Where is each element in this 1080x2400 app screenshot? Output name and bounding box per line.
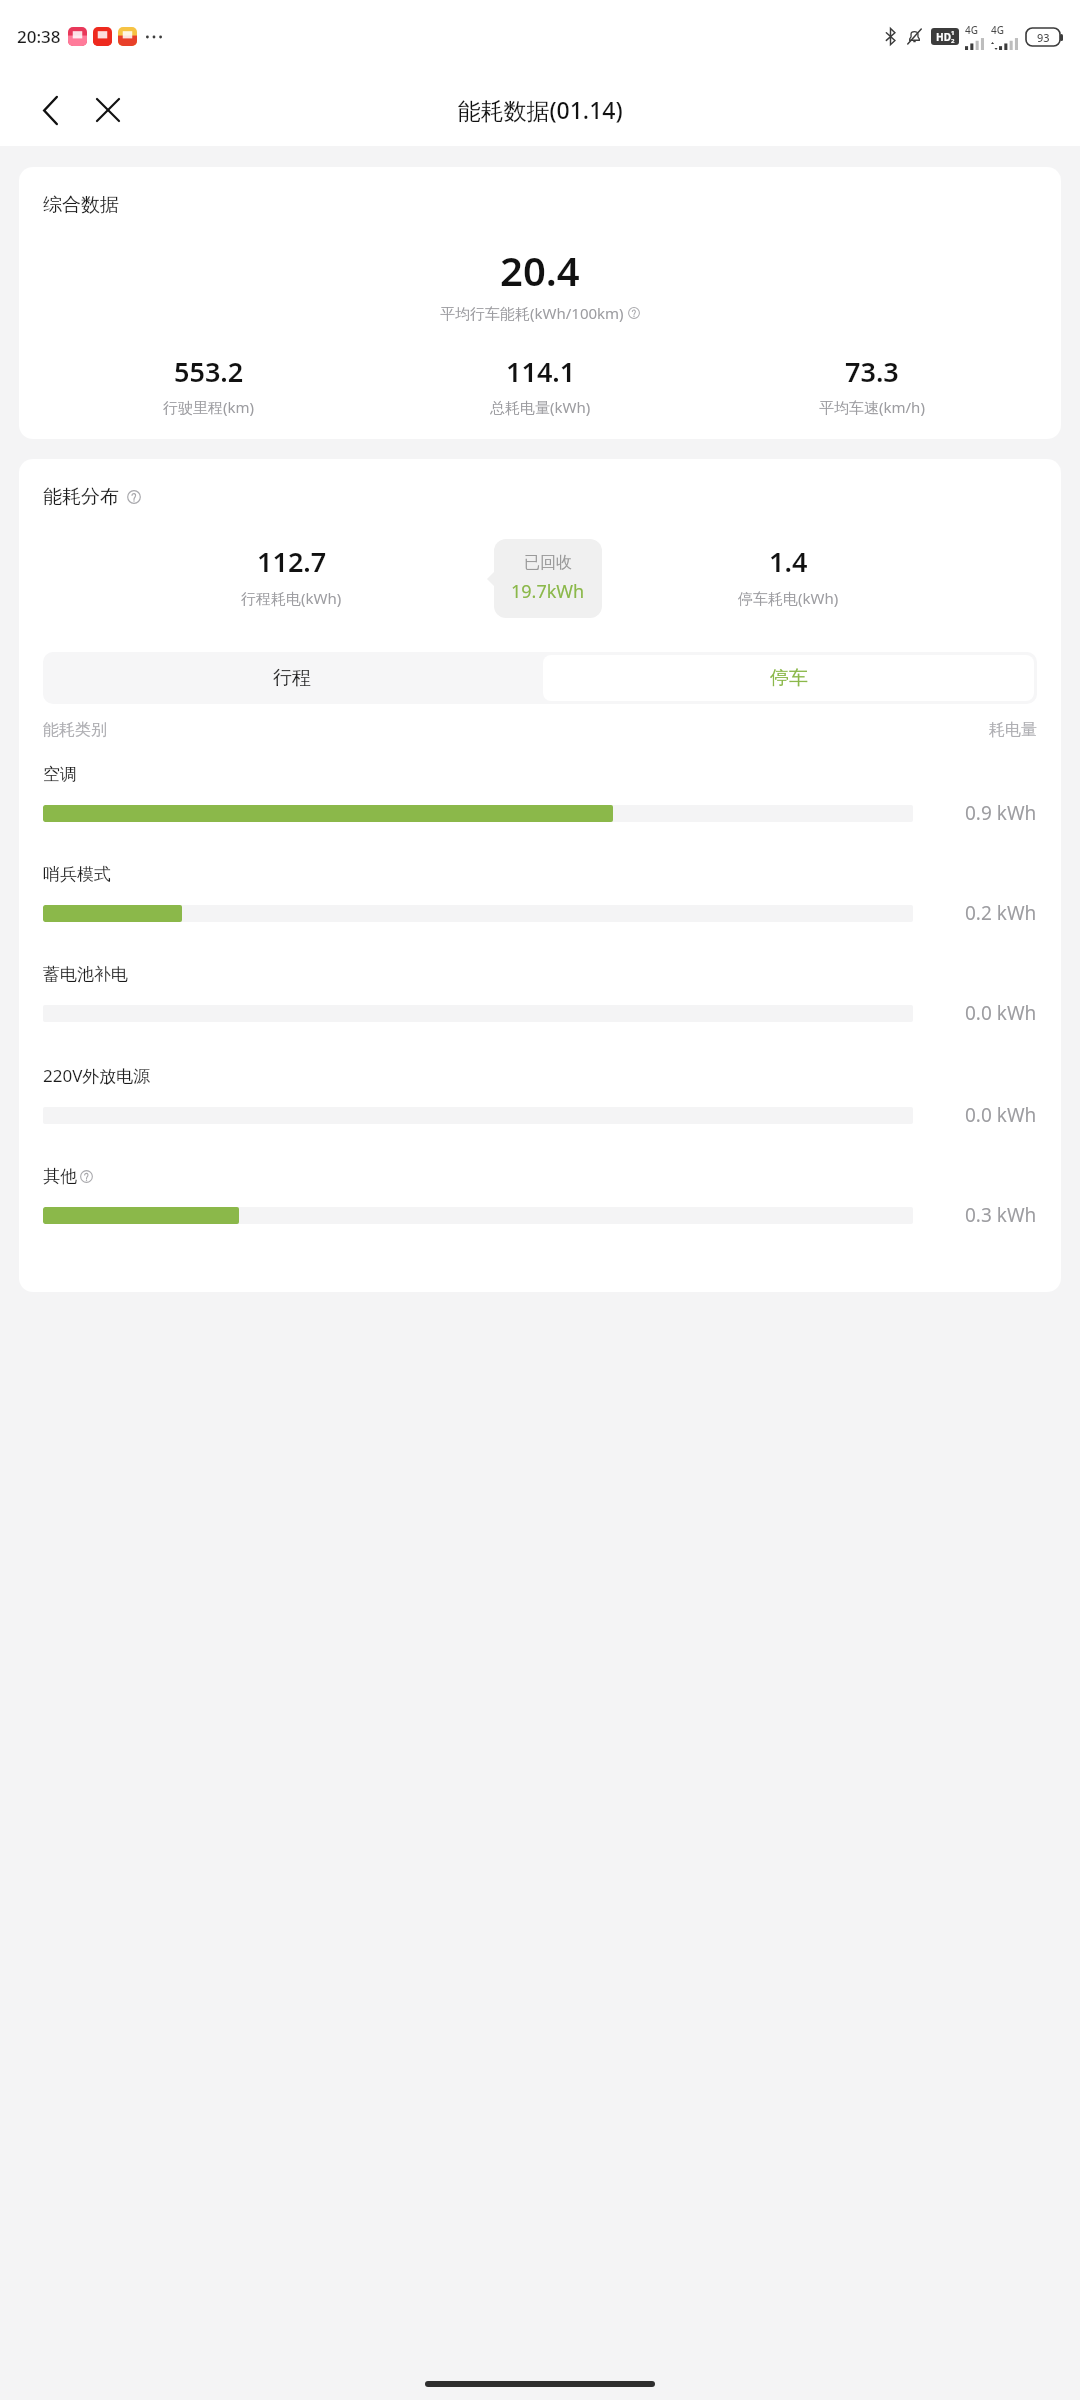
staticText: 4G bbox=[965, 23, 978, 37]
button[interactable]: 行程 bbox=[43, 652, 540, 704]
staticText: 220V外放电源 bbox=[43, 1064, 151, 1087]
staticText: 停车 bbox=[770, 666, 808, 690]
staticText: 4G bbox=[991, 23, 1004, 37]
staticText: 总耗电量(kWh) bbox=[490, 397, 591, 417]
button[interactable]: Back bbox=[24, 84, 76, 136]
staticText: 其他 bbox=[43, 1166, 77, 1187]
staticText: 空调 bbox=[43, 764, 77, 785]
staticText: 哨兵模式 bbox=[43, 864, 111, 885]
staticText: 行程 bbox=[273, 666, 311, 690]
staticText: 1 bbox=[951, 29, 955, 37]
staticText: 2 bbox=[951, 37, 955, 45]
staticText: 19.7kWh bbox=[511, 579, 585, 604]
staticText: 1.4 bbox=[769, 543, 808, 580]
staticText: 平均行车能耗(kWh/100km) bbox=[440, 303, 624, 323]
staticText: 73.3 bbox=[845, 353, 899, 390]
staticText: HD bbox=[936, 30, 951, 44]
staticText: 93 bbox=[1037, 30, 1050, 45]
staticText: 能耗数据(01.14) bbox=[457, 94, 623, 125]
staticText: 0.9 kWh bbox=[965, 800, 1037, 826]
button[interactable]: 停车 bbox=[543, 655, 1034, 701]
staticText: 553.2 bbox=[174, 353, 244, 390]
staticText: 已回收 bbox=[524, 553, 572, 573]
staticText: 114.1 bbox=[506, 353, 576, 390]
staticText: 0.3 kWh bbox=[965, 1202, 1037, 1228]
staticText: 112.7 bbox=[257, 543, 327, 580]
staticText: 行驶里程(km) bbox=[163, 397, 255, 417]
staticText: 综合数据 bbox=[43, 193, 119, 217]
staticText: 行程耗电(kWh) bbox=[241, 588, 342, 608]
staticText: 蓄电池补电 bbox=[43, 964, 128, 985]
staticText: 耗电量 bbox=[989, 720, 1037, 740]
staticText: 0.0 kWh bbox=[965, 1000, 1037, 1026]
button[interactable]: Close bbox=[82, 84, 134, 136]
staticText: 0.2 kWh bbox=[965, 900, 1037, 926]
staticText: 0.0 kWh bbox=[965, 1102, 1037, 1128]
staticText: 20:38 bbox=[17, 25, 61, 48]
staticText: 能耗类别 bbox=[43, 720, 107, 740]
staticText: 平均车速(km/h) bbox=[819, 397, 925, 417]
staticText: 20.4 bbox=[500, 243, 580, 297]
staticText: 能耗分布 bbox=[43, 485, 119, 509]
staticText: 停车耗电(kWh) bbox=[738, 588, 839, 608]
